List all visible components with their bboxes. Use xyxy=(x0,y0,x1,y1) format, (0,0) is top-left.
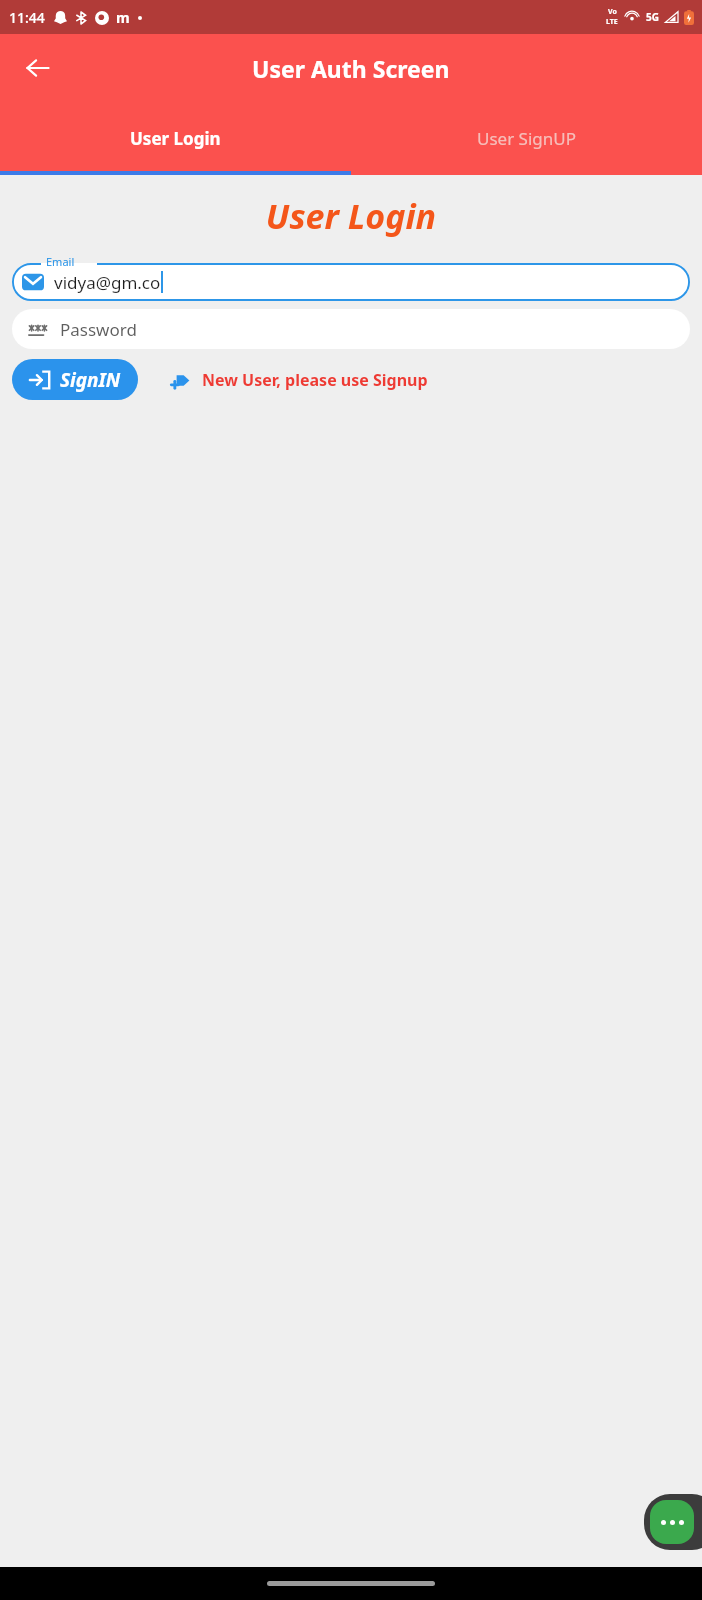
staticText: User Auth Screen xyxy=(252,53,450,84)
staticText: Password xyxy=(60,318,137,341)
staticText: vidya@gm.co xyxy=(54,271,161,294)
button[interactable]: User Login xyxy=(0,113,351,175)
staticText: User Login xyxy=(0,193,702,239)
staticText: New User, please use Signup xyxy=(202,369,428,391)
staticText: 11:44 xyxy=(9,8,45,27)
staticText: LTE xyxy=(606,17,618,27)
staticText: User Login xyxy=(130,127,221,150)
staticText: m xyxy=(116,8,130,27)
button[interactable] xyxy=(12,263,690,301)
button[interactable]: Back xyxy=(10,40,66,96)
staticText: User SignUP xyxy=(477,127,576,150)
staticText: SignIN xyxy=(60,367,121,393)
button[interactable]: Password xyxy=(12,309,690,349)
button[interactable]: User SignUP xyxy=(351,113,702,175)
staticText: 5G xyxy=(646,10,659,24)
staticText: Email xyxy=(46,254,75,269)
button[interactable]: More options xyxy=(644,1494,702,1550)
staticText: Vo xyxy=(608,7,617,17)
button[interactable]: SignIN xyxy=(12,359,138,400)
button[interactable]: New User, please use Signup xyxy=(166,363,432,397)
